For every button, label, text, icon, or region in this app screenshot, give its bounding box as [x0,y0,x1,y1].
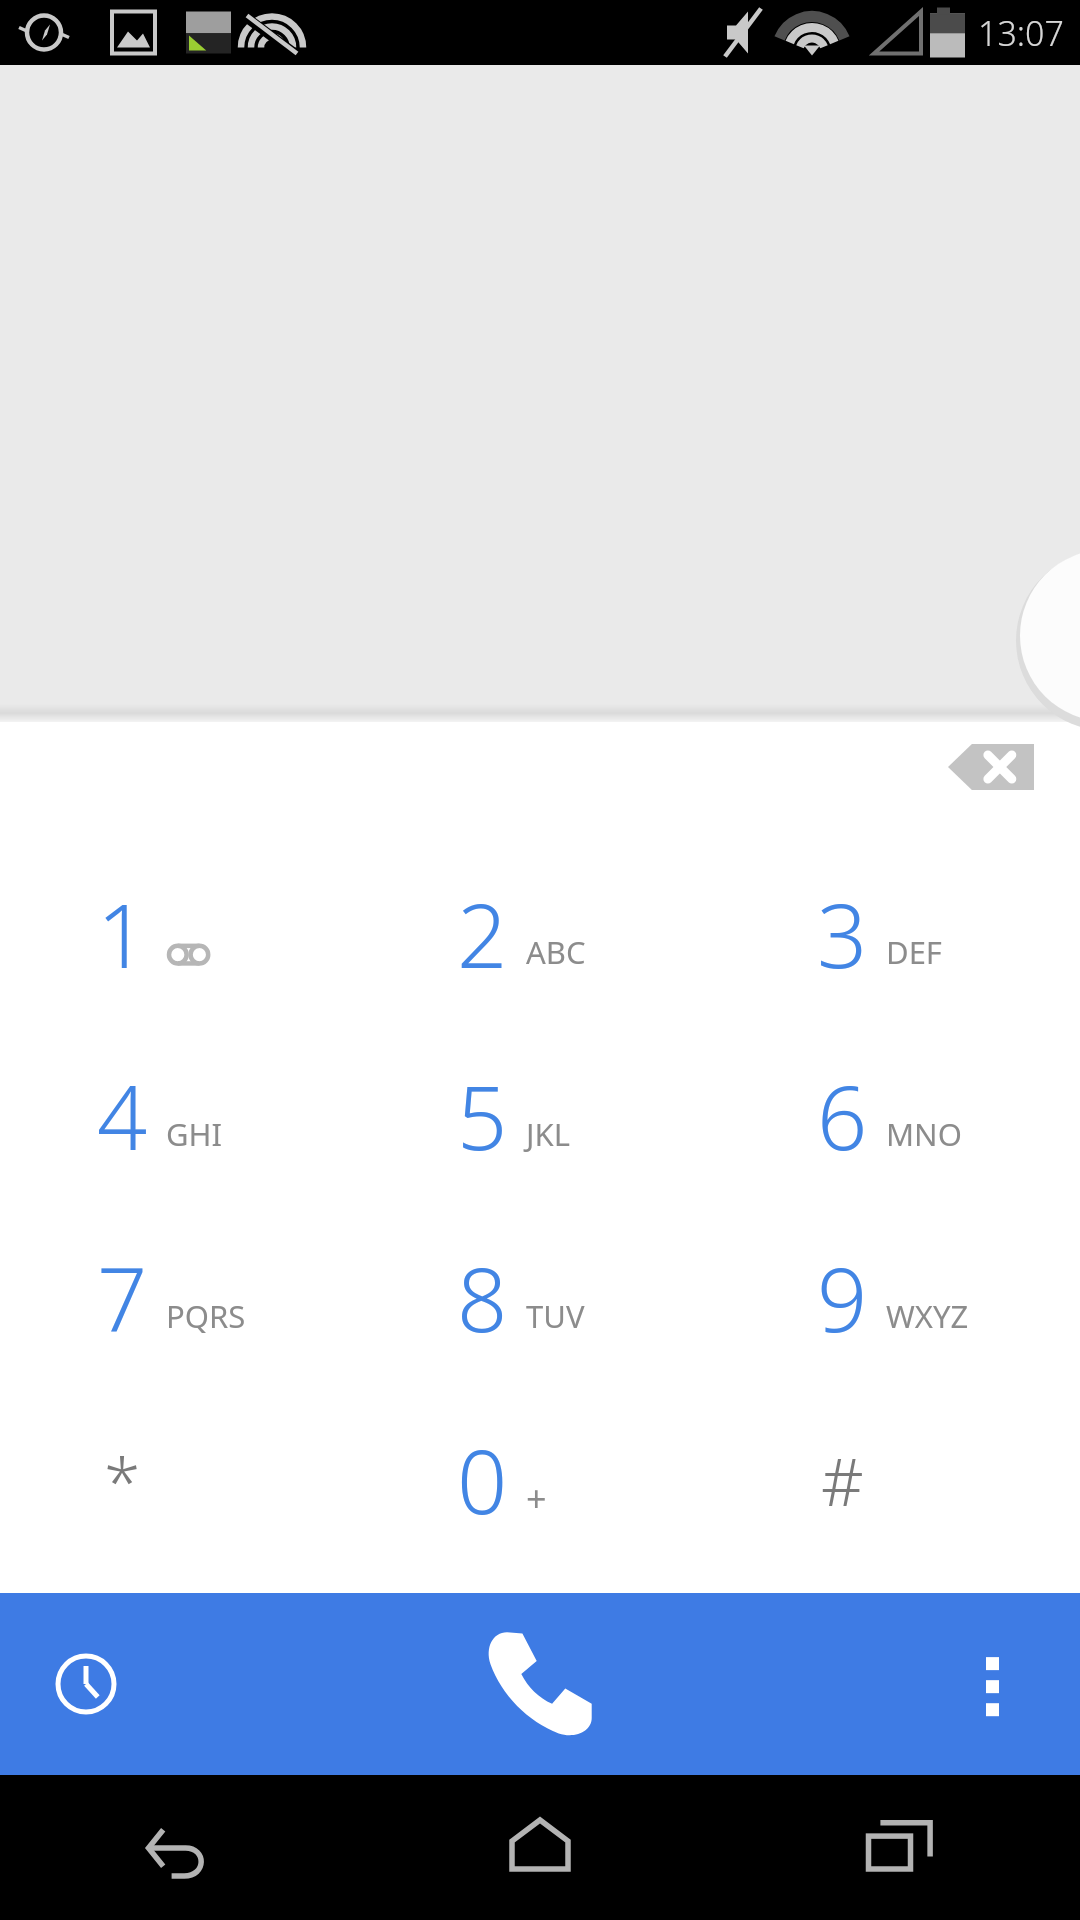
button[interactable]: 2 [360,842,720,1025]
button[interactable]: Call history [36,1634,136,1734]
button[interactable]: 9 [720,1207,1080,1389]
staticText: 6 [817,1056,868,1176]
staticText: PQRS [166,1295,246,1337]
staticText: * [104,1435,141,1525]
button[interactable]: Home [360,1775,720,1920]
button[interactable]: # [720,1389,1080,1571]
staticText: 7 [97,1238,148,1358]
button[interactable]: Back [0,1775,360,1920]
staticText: + [526,1474,547,1523]
staticText: 0 [457,1420,508,1540]
staticText: 2 [457,874,508,994]
button[interactable]: Recent apps [720,1775,1080,1920]
staticText: 8 [457,1238,508,1358]
staticText: 3 [817,874,868,994]
staticText: JKL [526,1113,570,1155]
button[interactable]: 6 [720,1025,1080,1207]
staticText: TUV [526,1295,585,1337]
button[interactable]: 1 [0,842,360,1025]
button[interactable]: 5 [360,1025,720,1207]
staticText: 1 [97,874,148,994]
button[interactable]: 7 [0,1207,360,1389]
button[interactable]: 8 [360,1207,720,1389]
button[interactable]: 3 [720,842,1080,1025]
staticText: 4 [97,1056,148,1176]
button[interactable]: Call [465,1609,615,1759]
staticText: 13:07 [978,10,1064,56]
staticText: MNO [886,1113,962,1155]
button[interactable]: More options [942,1634,1042,1734]
button[interactable]: 4 [0,1025,360,1207]
button[interactable]: Backspace [948,744,1034,790]
staticText: 9 [817,1238,868,1358]
staticText: DEF [886,931,942,973]
staticText: # [821,1435,864,1525]
staticText: GHI [166,1113,223,1155]
button[interactable]: * [0,1389,360,1571]
staticText: WXYZ [886,1295,969,1337]
button[interactable]: Dialpad [1014,562,1080,722]
staticText: 5 [457,1056,508,1176]
staticText: ABC [526,931,586,973]
button[interactable]: 0 [360,1389,720,1571]
